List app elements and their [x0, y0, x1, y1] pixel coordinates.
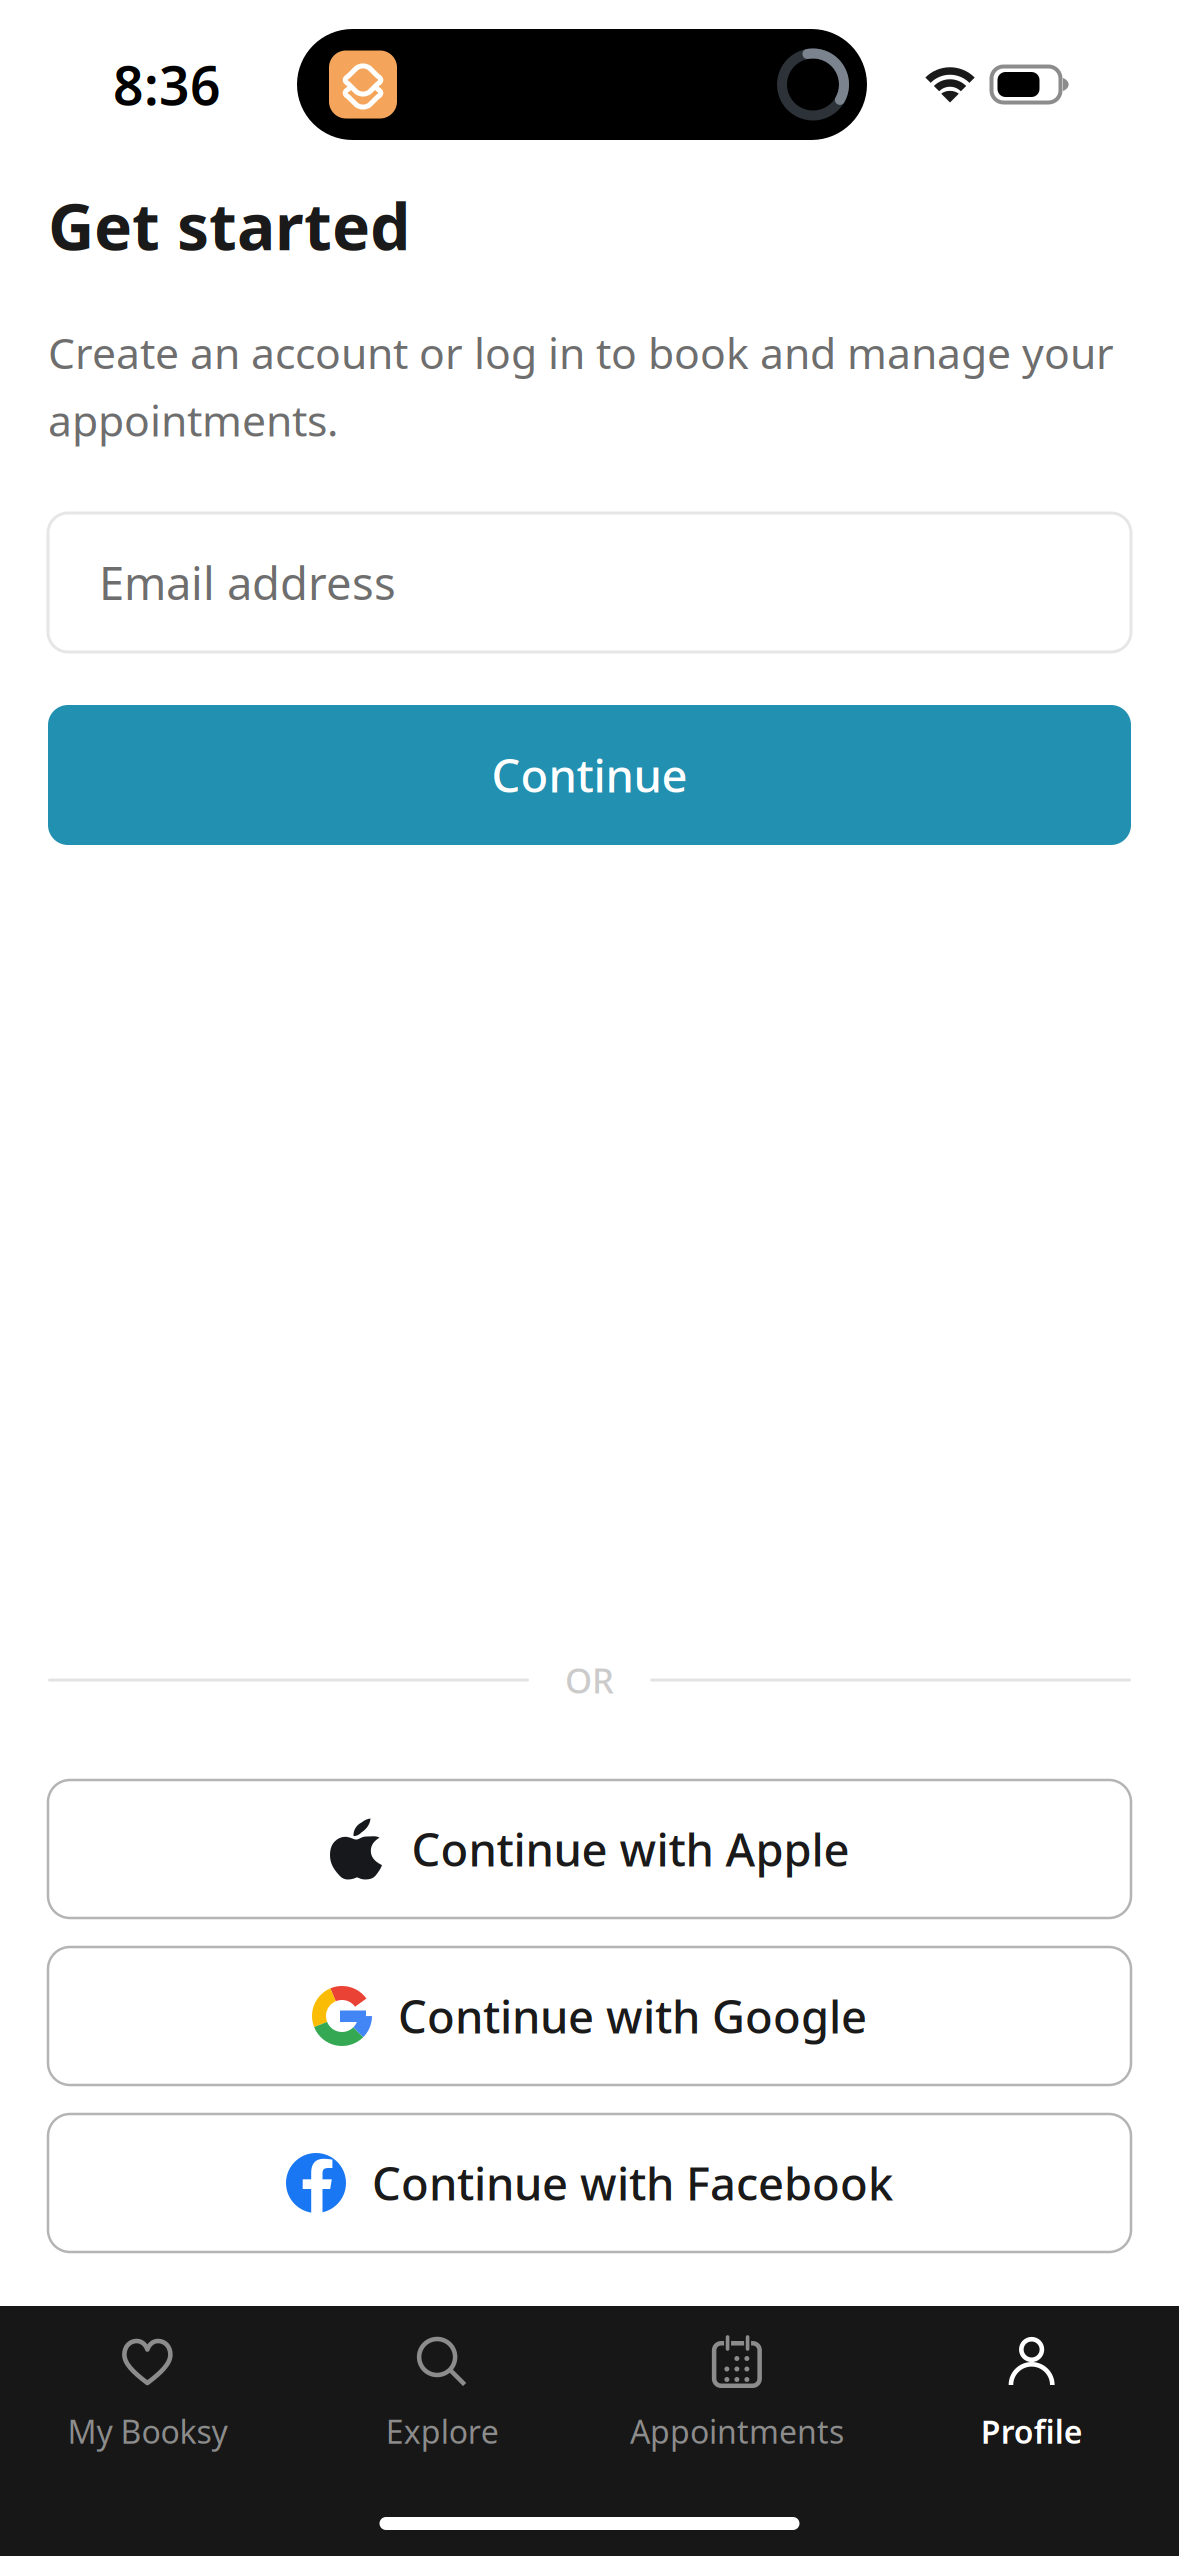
staticText: Profile: [981, 2410, 1083, 2452]
staticText: My Booksy: [67, 2410, 227, 2452]
button[interactable]: Continue: [48, 705, 1131, 845]
staticText: Continue with Apple: [411, 1819, 849, 1879]
button[interactable]: Continue with Apple: [48, 1780, 1131, 1918]
staticText: Continue: [491, 745, 687, 805]
button[interactable]: Email address: [48, 513, 1131, 652]
staticText: 8:36: [113, 49, 221, 120]
button[interactable]: Appointments: [589, 2336, 884, 2486]
button[interactable]: Explore: [295, 2336, 590, 2486]
staticText: Appointments: [630, 2410, 844, 2452]
staticText: appointments.: [48, 392, 338, 448]
button[interactable]: My Booksy: [0, 2336, 295, 2486]
staticText: Continue with Google: [398, 1986, 867, 2046]
staticText: Continue with Facebook: [372, 2153, 893, 2213]
button[interactable]: Continue with Google: [48, 1947, 1131, 2085]
button[interactable]: Continue with Facebook: [48, 2114, 1131, 2252]
staticText: Explore: [386, 2410, 499, 2452]
staticText: OR: [565, 1657, 614, 1703]
staticText: Get started: [48, 183, 410, 268]
staticText: Email address: [99, 552, 396, 613]
staticText: Create an account or log in to book and …: [48, 324, 1114, 381]
button[interactable]: Profile: [884, 2336, 1179, 2486]
